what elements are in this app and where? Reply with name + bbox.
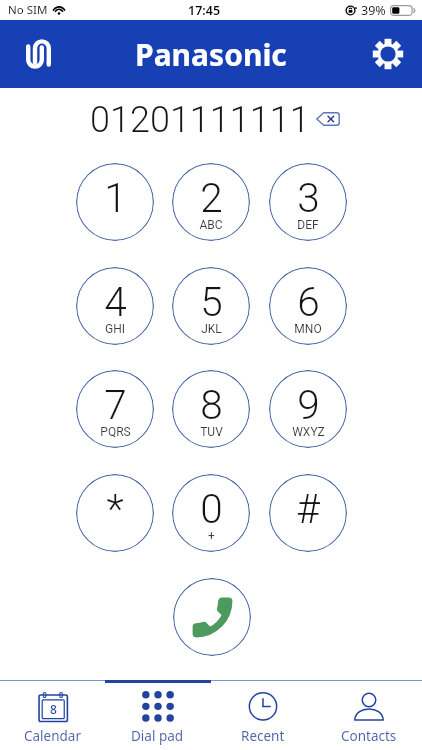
staticText: # xyxy=(296,485,320,532)
button[interactable]: Recent xyxy=(210,683,316,750)
button[interactable]: Settings xyxy=(366,32,410,76)
staticText: + xyxy=(208,529,215,543)
button[interactable]: # xyxy=(269,474,347,552)
staticText: 1 xyxy=(104,174,127,221)
staticText: PQRS xyxy=(100,425,131,439)
staticText: Contacts xyxy=(341,727,397,745)
button[interactable]: 3 xyxy=(269,163,347,241)
staticText: 6 xyxy=(297,278,320,325)
button[interactable]: 6 xyxy=(269,267,347,345)
staticText: Panasonic xyxy=(135,34,287,75)
staticText: 5 xyxy=(200,278,223,325)
button[interactable]: 5 xyxy=(172,267,250,345)
staticText: 0 xyxy=(200,485,223,532)
button[interactable]: 8 xyxy=(0,683,105,750)
button[interactable]: 2 xyxy=(172,163,250,241)
staticText: DEF xyxy=(297,218,319,232)
staticText: 3 xyxy=(297,174,320,221)
button[interactable]: * xyxy=(76,474,154,552)
staticText: MNO xyxy=(294,322,322,336)
staticText: No SIM xyxy=(8,2,48,18)
staticText: 17:45 xyxy=(188,2,221,19)
staticText: TUV xyxy=(200,425,223,439)
button[interactable]: 8 xyxy=(172,370,250,448)
button[interactable]: Backspace xyxy=(310,101,346,137)
staticText: Calendar xyxy=(24,727,81,745)
staticText: 7 xyxy=(104,381,127,428)
staticText: WXYZ xyxy=(292,425,325,439)
staticText: GHI xyxy=(105,322,125,336)
button[interactable]: Attachment xyxy=(14,30,62,78)
staticText: Recent xyxy=(241,727,285,745)
button[interactable]: Dial pad xyxy=(105,683,210,750)
staticText: 8 xyxy=(200,381,223,428)
staticText: 01201111111 xyxy=(90,99,310,141)
button[interactable]: 9 xyxy=(269,370,347,448)
button[interactable]: Call xyxy=(173,578,251,656)
staticText: Dial pad xyxy=(131,727,184,745)
staticText: 39% xyxy=(361,2,386,19)
staticText: 4 xyxy=(104,278,127,325)
button[interactable]: Contacts xyxy=(316,683,422,750)
button[interactable]: 4 xyxy=(76,267,154,345)
staticText: * xyxy=(106,485,124,532)
staticText: 2 xyxy=(200,174,223,221)
button[interactable]: 0 xyxy=(172,474,250,552)
staticText: 9 xyxy=(297,381,320,428)
button[interactable]: 1 xyxy=(76,163,154,241)
staticText: 8 xyxy=(50,701,57,717)
staticText: ABC xyxy=(199,218,223,232)
staticText: JKL xyxy=(201,322,222,336)
button[interactable]: 7 xyxy=(76,370,154,448)
